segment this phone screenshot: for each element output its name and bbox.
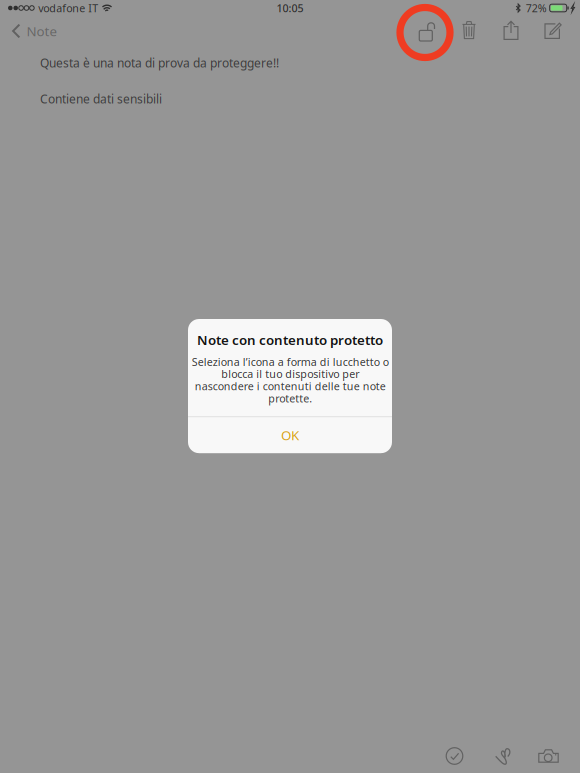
button[interactable]: Delete Note bbox=[448, 16, 490, 46]
staticText: Note bbox=[26, 22, 57, 40]
staticText: OK bbox=[281, 426, 299, 444]
button[interactable]: Lock Note bbox=[406, 16, 448, 46]
staticText: Questa è una nota di prova da proteggere… bbox=[40, 55, 279, 71]
button[interactable]: Share bbox=[490, 16, 532, 46]
button[interactable]: OK bbox=[188, 417, 392, 453]
staticText: Note con contenuto protetto bbox=[197, 331, 383, 349]
staticText: vodafone IT bbox=[38, 1, 98, 15]
staticText: Seleziona l’icona a forma di lucchetto o… bbox=[191, 355, 388, 405]
staticText: 10:05 bbox=[276, 1, 303, 15]
button[interactable]: Draw bbox=[478, 741, 525, 771]
button[interactable]: Note bbox=[0, 16, 67, 46]
staticText: 72% bbox=[526, 1, 547, 15]
button[interactable]: Camera bbox=[525, 741, 572, 771]
staticText: Contiene dati sensibili bbox=[40, 91, 162, 107]
button[interactable]: New Note bbox=[532, 16, 574, 46]
button[interactable]: Checklist bbox=[431, 741, 478, 771]
